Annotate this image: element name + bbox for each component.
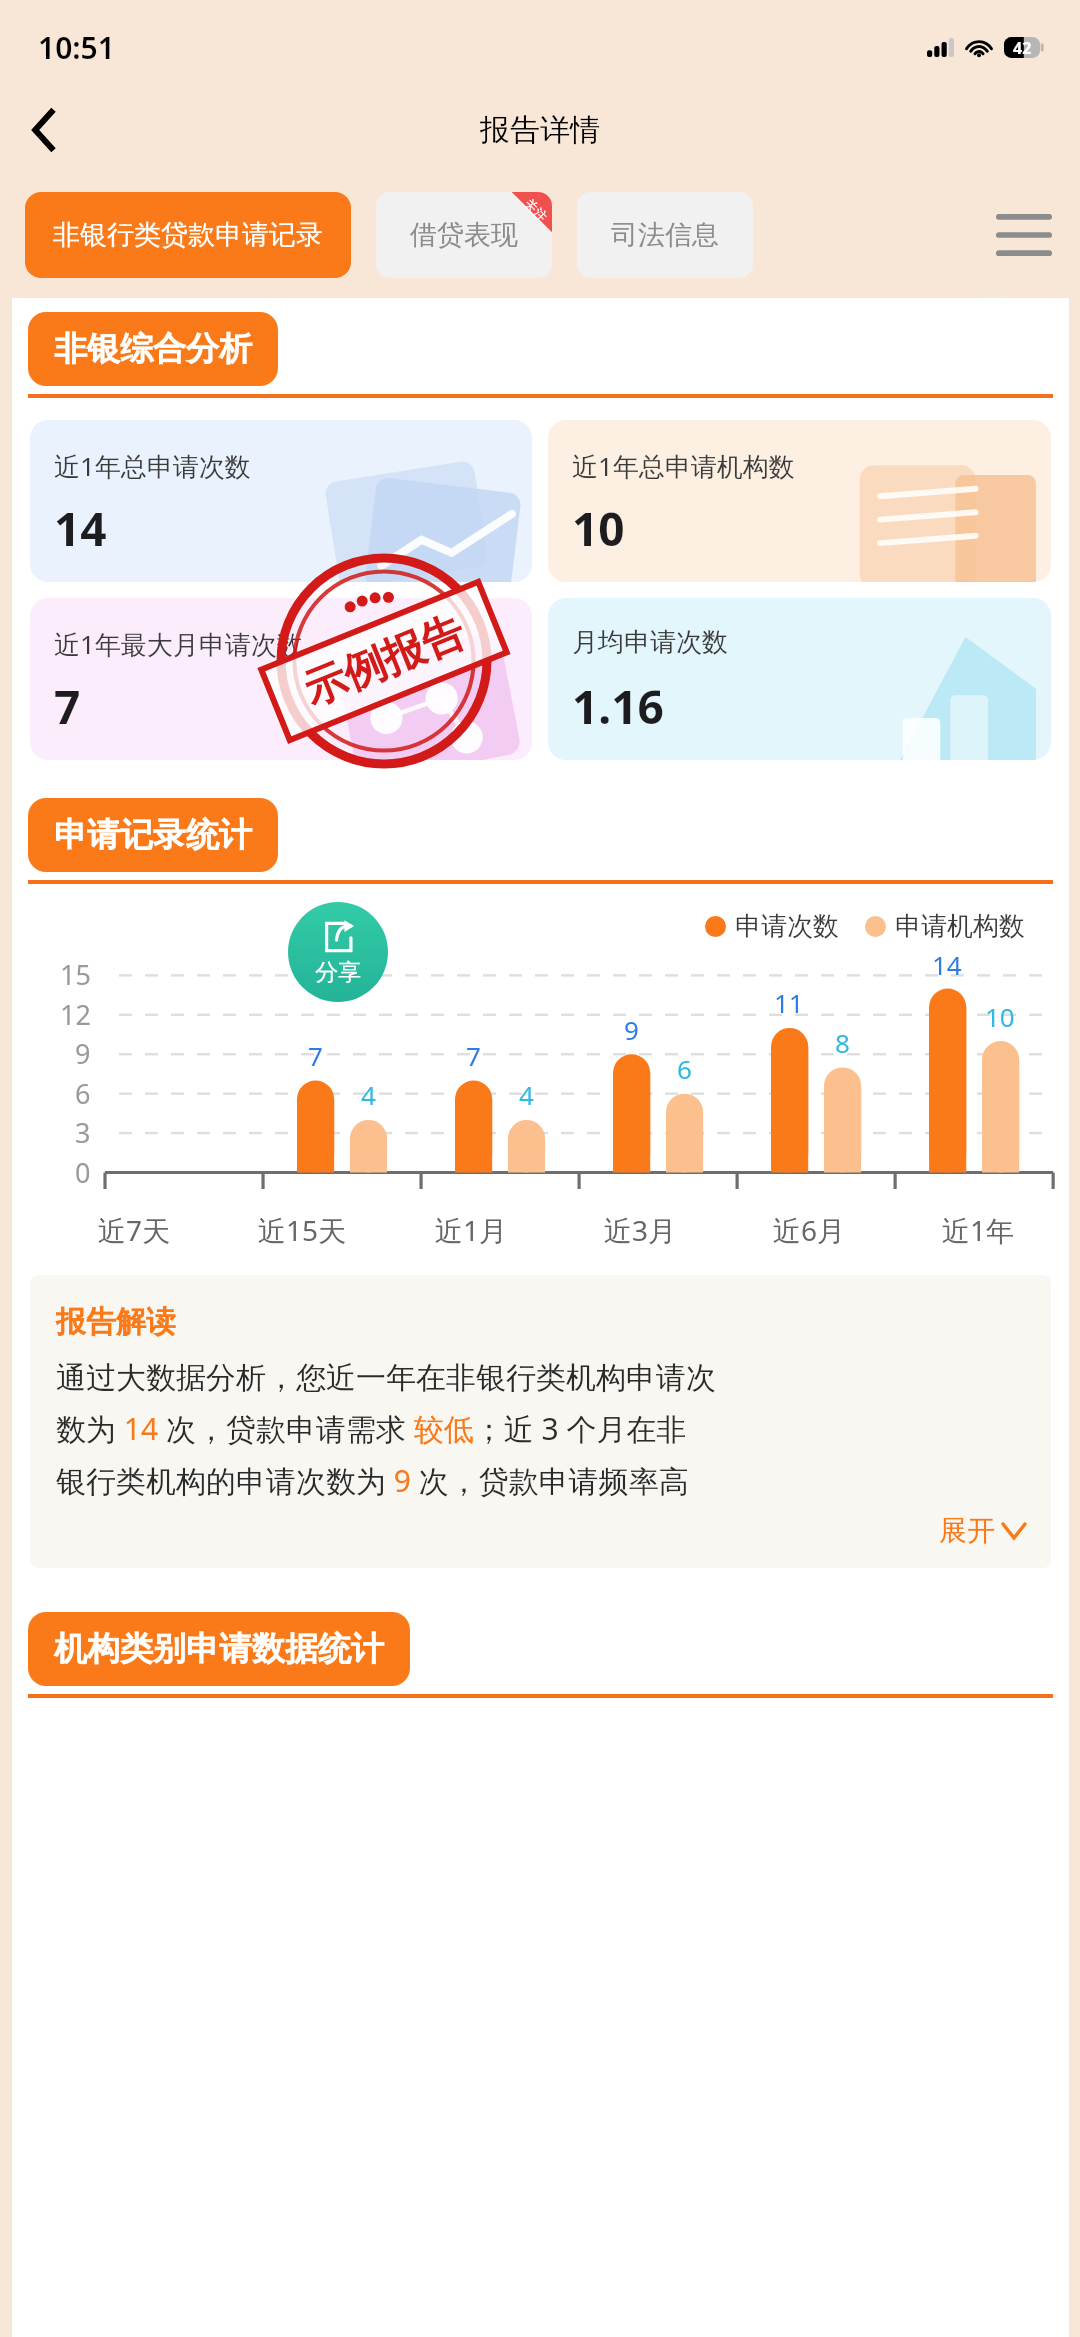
button[interactable]: 展开 (56, 1513, 1025, 1548)
staticText: 0 (75, 1154, 91, 1191)
staticText: 4 (519, 1077, 534, 1112)
staticText: 10 (572, 497, 625, 560)
staticText: 展开 (939, 1513, 995, 1548)
staticText: 机构类别申请数据统计 (54, 1628, 384, 1670)
button[interactable]: Menu (968, 172, 1080, 298)
staticText: 6 (75, 1075, 91, 1112)
staticText: 月均申请次数 (572, 626, 728, 659)
staticText: 1.16 (572, 675, 664, 738)
staticText: 近1年最大月申请次数 (54, 626, 303, 662)
staticText: 通过大数据分析，您近一年在非银行类机构申请次 数为 14 次，贷款申请需求 较低… (56, 1359, 716, 1501)
staticText: 7 (308, 1038, 323, 1073)
staticText: 8 (835, 1025, 850, 1060)
staticText: 报告详情 (480, 111, 600, 149)
staticText: 近7天 (98, 1211, 171, 1249)
button[interactable]: 司法信息 (577, 192, 753, 278)
button[interactable]: 借贷表现 (376, 192, 552, 278)
button[interactable]: 近1年最大月申请次数 (30, 598, 532, 760)
button[interactable]: 近1年总申请机构数 (548, 420, 1051, 582)
staticText: 分享 (315, 958, 361, 987)
staticText: 报告解读 (56, 1303, 176, 1341)
staticText: 近3月 (604, 1211, 677, 1249)
staticText: 申请次数 (735, 910, 839, 943)
staticText: 7 (54, 675, 81, 738)
staticText: 近1月 (435, 1211, 508, 1249)
staticText: 15 (60, 956, 91, 993)
staticText: 9 (75, 1035, 91, 1072)
staticText: 非银综合分析 (54, 328, 252, 370)
staticText: 申请机构数 (895, 910, 1025, 943)
staticText: 近1年 (942, 1211, 1015, 1249)
staticText: 4 (361, 1077, 376, 1112)
staticText: 6 (677, 1051, 692, 1086)
staticText: 14 (54, 497, 107, 560)
staticText: 7 (466, 1038, 481, 1073)
staticText: 借贷表现 (410, 218, 518, 252)
staticText: 近6月 (773, 1211, 846, 1249)
staticText: 42 (1013, 37, 1032, 58)
staticText: 11 (774, 985, 804, 1020)
staticText: 3 (75, 1114, 91, 1151)
button[interactable]: 非银行类贷款申请记录 (25, 192, 351, 278)
staticText: 近1年总申请次数 (54, 448, 251, 484)
staticText: 关注 (521, 195, 551, 225)
button[interactable]: 月均申请次数 (548, 598, 1051, 760)
staticText: 9 (624, 1012, 639, 1047)
button[interactable]: 近1年总申请次数 (30, 420, 532, 582)
staticText: 申请记录统计 (54, 814, 252, 856)
staticText: 14 (932, 947, 962, 982)
staticText: 示例报告 (296, 605, 472, 717)
button[interactable]: Share (288, 902, 388, 1002)
button[interactable]: Back (16, 102, 72, 158)
staticText: 近15天 (258, 1211, 347, 1249)
staticText: 10:51 (38, 27, 115, 68)
staticText: 12 (60, 996, 91, 1033)
staticText: 非银行类贷款申请记录 (53, 218, 323, 252)
staticText: 司法信息 (611, 218, 719, 252)
staticText: 近1年总申请机构数 (572, 448, 795, 484)
staticText: 10 (985, 999, 1015, 1034)
